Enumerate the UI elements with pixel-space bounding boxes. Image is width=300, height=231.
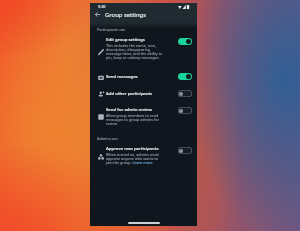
button[interactable]: Toggle on — [178, 73, 192, 80]
staticText: Send for admin review — [106, 106, 152, 112]
button[interactable]: Toggle off — [178, 90, 192, 97]
staticText: This includes the name, icon, descriptio… — [106, 43, 164, 60]
staticText: Participants can — [97, 27, 126, 32]
staticText: 9:30 — [98, 4, 106, 9]
button[interactable]: Toggle off — [178, 147, 192, 154]
button[interactable] — [90, 35, 197, 61]
staticText: Send messages — [106, 73, 138, 79]
staticText: Approve new participants — [106, 145, 159, 151]
staticText: Allow group members to send messages to … — [106, 113, 164, 126]
staticText: Group settings — [105, 11, 146, 19]
button[interactable]: Toggle off — [178, 107, 192, 114]
button[interactable] — [90, 143, 197, 168]
button[interactable]: Back — [91, 8, 103, 20]
staticText: Admins can — [97, 136, 118, 141]
button[interactable] — [90, 88, 197, 103]
button[interactable] — [90, 70, 197, 85]
staticText: Edit group settings — [106, 36, 145, 42]
staticText: When turned on, admins must approve anyo… — [106, 152, 164, 165]
staticText: Add other participants — [106, 90, 153, 96]
button[interactable] — [90, 104, 197, 129]
button[interactable]: Toggle on — [178, 38, 192, 45]
